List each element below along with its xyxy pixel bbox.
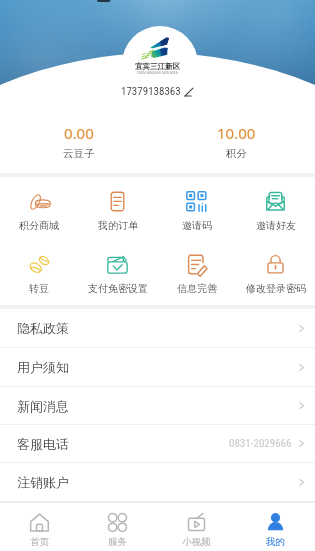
button[interactable]: 修改登录密码 (236, 253, 315, 295)
staticText: 隐私政策 (17, 320, 69, 336)
staticText: 我的订单 (98, 219, 138, 232)
button[interactable]: 0.00 (0, 123, 157, 160)
staticText: 0.00 (64, 123, 94, 143)
staticText: 注销账户 (17, 474, 69, 490)
staticText: 新闻消息 (17, 398, 69, 414)
staticText: 首页 (30, 536, 49, 548)
staticText: 邀请码 (182, 219, 212, 232)
staticText: 客服电话 (17, 436, 69, 452)
staticText: 小视频 (182, 536, 211, 548)
button[interactable]: Videos (157, 503, 236, 551)
staticText: 云豆子 (63, 147, 95, 160)
button[interactable]: 10.00 (157, 123, 315, 160)
button[interactable]: 隐私政策 (0, 309, 315, 347)
staticText: 信息完善 (177, 282, 217, 295)
staticText: 转豆 (29, 282, 49, 295)
button[interactable]: 用户须知 (0, 348, 315, 386)
staticText: YIBIN SANJIANG NEW AREA (137, 71, 178, 75)
staticText: 用户须知 (17, 359, 69, 375)
button[interactable]: 邀请码 (157, 190, 236, 232)
staticText: 10.00 (217, 123, 256, 143)
staticText: 我的 (266, 536, 285, 548)
button[interactable]: 我的订单 (78, 190, 157, 232)
staticText: 0831-2029666 (229, 437, 292, 450)
button[interactable]: Home (0, 503, 78, 551)
button[interactable]: 邀请好友 (236, 190, 315, 232)
staticText: 邀请好友 (256, 219, 296, 232)
button[interactable]: 信息完善 (157, 253, 236, 295)
button[interactable]: Edit phone number (184, 87, 194, 97)
staticText: 积分 (226, 147, 247, 160)
button[interactable]: 积分商城 (0, 190, 78, 232)
button[interactable]: 支付免密设置 (78, 253, 157, 295)
staticText: 支付免密设置 (88, 282, 148, 295)
button[interactable]: Profile (236, 503, 315, 551)
button[interactable]: 注销账户 (0, 463, 315, 501)
staticText: 服务 (108, 536, 127, 548)
button[interactable]: 新闻消息 (0, 387, 315, 424)
staticText: 17379138363 (121, 85, 181, 98)
staticText: 宜宾三江新区 (135, 62, 180, 71)
staticText: 修改登录密码 (246, 282, 306, 295)
button[interactable]: 客服电话 (0, 425, 315, 462)
staticText: 积分商城 (19, 219, 59, 232)
button[interactable]: 转豆 (0, 253, 78, 295)
button[interactable]: Services (78, 503, 157, 551)
